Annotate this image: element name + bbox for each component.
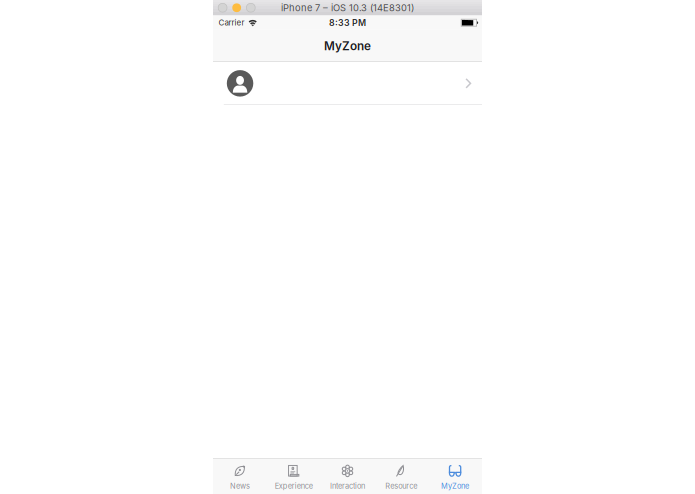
button[interactable]: MyZone <box>428 458 482 494</box>
button[interactable] <box>213 62 482 105</box>
staticText: Interaction <box>330 481 365 490</box>
staticText: Experience <box>275 481 313 490</box>
button[interactable]: News <box>213 458 267 494</box>
staticText: MyZone <box>324 39 371 53</box>
button[interactable]: Resource <box>374 458 428 494</box>
staticText: News <box>230 481 250 490</box>
staticText: Carrier <box>218 18 244 28</box>
staticText: 8:33 PM <box>329 17 366 28</box>
staticText: iPhone 7 – iOS 10.3 (14E8301) <box>281 2 414 13</box>
staticText: Resource <box>385 481 417 490</box>
staticText: MyZone <box>441 481 469 490</box>
button[interactable]: Interaction <box>321 458 374 494</box>
button[interactable]: Experience <box>267 458 321 494</box>
